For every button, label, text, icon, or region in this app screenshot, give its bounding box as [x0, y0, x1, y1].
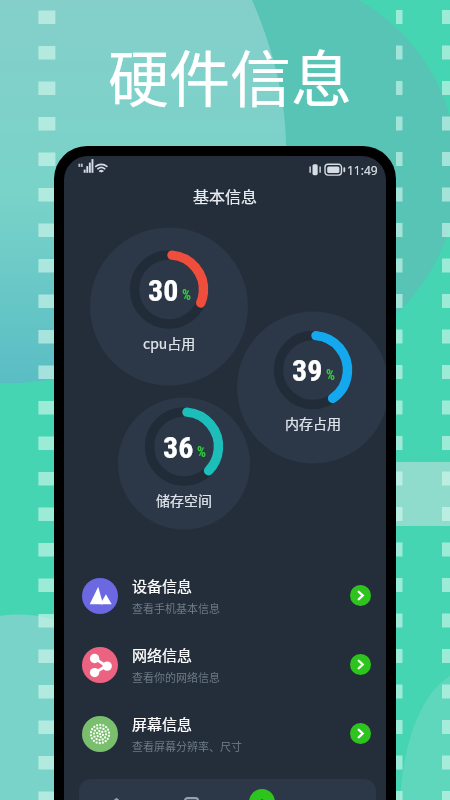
- staticText: 39: [292, 353, 323, 387]
- staticText: %: [182, 287, 191, 303]
- staticText: 查看屏幕分辨率、尺寸: [132, 738, 242, 754]
- button[interactable]: Tab 1: [154, 779, 228, 800]
- staticText: 11:49: [347, 162, 378, 178]
- staticText: 30: [148, 273, 179, 307]
- staticText: 硬件信息: [108, 31, 353, 119]
- button[interactable]: 网络信息: [70, 630, 381, 699]
- staticText: 屏幕信息: [132, 713, 193, 735]
- button[interactable]: Open 设备信息: [350, 585, 371, 606]
- staticText: 基本信息: [193, 184, 258, 207]
- staticText: 设备信息: [132, 575, 193, 597]
- staticText: cpu占用: [143, 333, 196, 353]
- staticText: 查看你的网络信息: [132, 669, 220, 685]
- staticText: 储存空间: [156, 490, 212, 510]
- staticText: 内存占用: [285, 413, 341, 433]
- staticText: 网络信息: [132, 644, 193, 666]
- button[interactable]: Open 屏幕信息: [350, 723, 371, 744]
- button[interactable]: 设备信息: [70, 561, 381, 630]
- staticText: %: [197, 444, 206, 460]
- staticText: 查看手机基本信息: [132, 600, 220, 616]
- button[interactable]: Tab 0: [79, 779, 154, 800]
- button[interactable]: Scan: [249, 789, 275, 800]
- staticText: 36: [163, 430, 194, 464]
- staticText: %: [326, 367, 335, 383]
- button[interactable]: Open 网络信息: [350, 654, 371, 675]
- button[interactable]: 屏幕信息: [70, 699, 381, 768]
